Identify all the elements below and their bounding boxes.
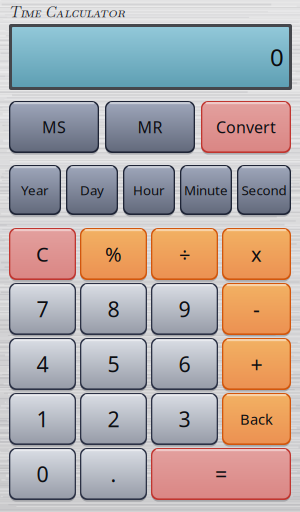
staticText: Day xyxy=(80,181,104,199)
staticText: - xyxy=(253,295,260,323)
button[interactable]: C xyxy=(9,228,76,280)
staticText: MR xyxy=(137,116,162,138)
staticText: Minute xyxy=(184,181,228,199)
button[interactable]: ÷ xyxy=(151,228,218,280)
button[interactable]: Day xyxy=(66,165,118,215)
staticText: C xyxy=(36,241,49,267)
staticText: 9 xyxy=(178,295,190,323)
button[interactable]: 9 xyxy=(151,283,218,335)
staticText: + xyxy=(250,350,262,378)
staticText: 7 xyxy=(36,295,48,323)
staticText: 8 xyxy=(107,295,119,323)
staticText: 0 xyxy=(270,41,284,73)
staticText: 1 xyxy=(36,405,48,433)
staticText: MS xyxy=(42,116,66,138)
button[interactable]: 1 xyxy=(9,393,76,445)
staticText: ÷ xyxy=(179,241,190,267)
staticText: Time Calculator xyxy=(9,2,125,21)
button[interactable]: 5 xyxy=(80,338,147,390)
button[interactable]: Minute xyxy=(180,165,232,215)
staticText: 2 xyxy=(107,405,119,433)
button[interactable]: Convert xyxy=(201,101,291,153)
staticText: 3 xyxy=(178,405,190,433)
button[interactable]: = xyxy=(151,448,291,500)
button[interactable]: 8 xyxy=(80,283,147,335)
button[interactable]: Hour xyxy=(123,165,175,215)
staticText: 4 xyxy=(36,350,48,378)
button[interactable]: 6 xyxy=(151,338,218,390)
staticText: Year xyxy=(21,181,49,199)
button[interactable]: Second xyxy=(237,165,291,215)
button[interactable]: Year xyxy=(9,165,61,215)
staticText: . xyxy=(110,460,116,488)
button[interactable]: x xyxy=(222,228,291,280)
button[interactable]: 4 xyxy=(9,338,76,390)
button[interactable]: 0 xyxy=(9,448,76,500)
button[interactable]: . xyxy=(80,448,147,500)
staticText: Convert xyxy=(216,116,276,138)
button[interactable]: % xyxy=(80,228,147,280)
staticText: 5 xyxy=(107,350,119,378)
staticText: Hour xyxy=(133,181,165,199)
button[interactable]: 2 xyxy=(80,393,147,445)
staticText: 0 xyxy=(36,460,48,488)
button[interactable]: Back xyxy=(222,393,291,445)
staticText: x xyxy=(251,241,262,267)
button[interactable]: MS xyxy=(9,101,99,153)
staticText: Second xyxy=(241,181,286,199)
button[interactable]: 3 xyxy=(151,393,218,445)
button[interactable]: - xyxy=(222,283,291,335)
staticText: % xyxy=(105,241,122,267)
staticText: Back xyxy=(240,409,273,429)
button[interactable]: + xyxy=(222,338,291,390)
staticText: 6 xyxy=(178,350,190,378)
staticText: = xyxy=(215,460,227,488)
button[interactable]: MR xyxy=(105,101,195,153)
button[interactable]: 7 xyxy=(9,283,76,335)
